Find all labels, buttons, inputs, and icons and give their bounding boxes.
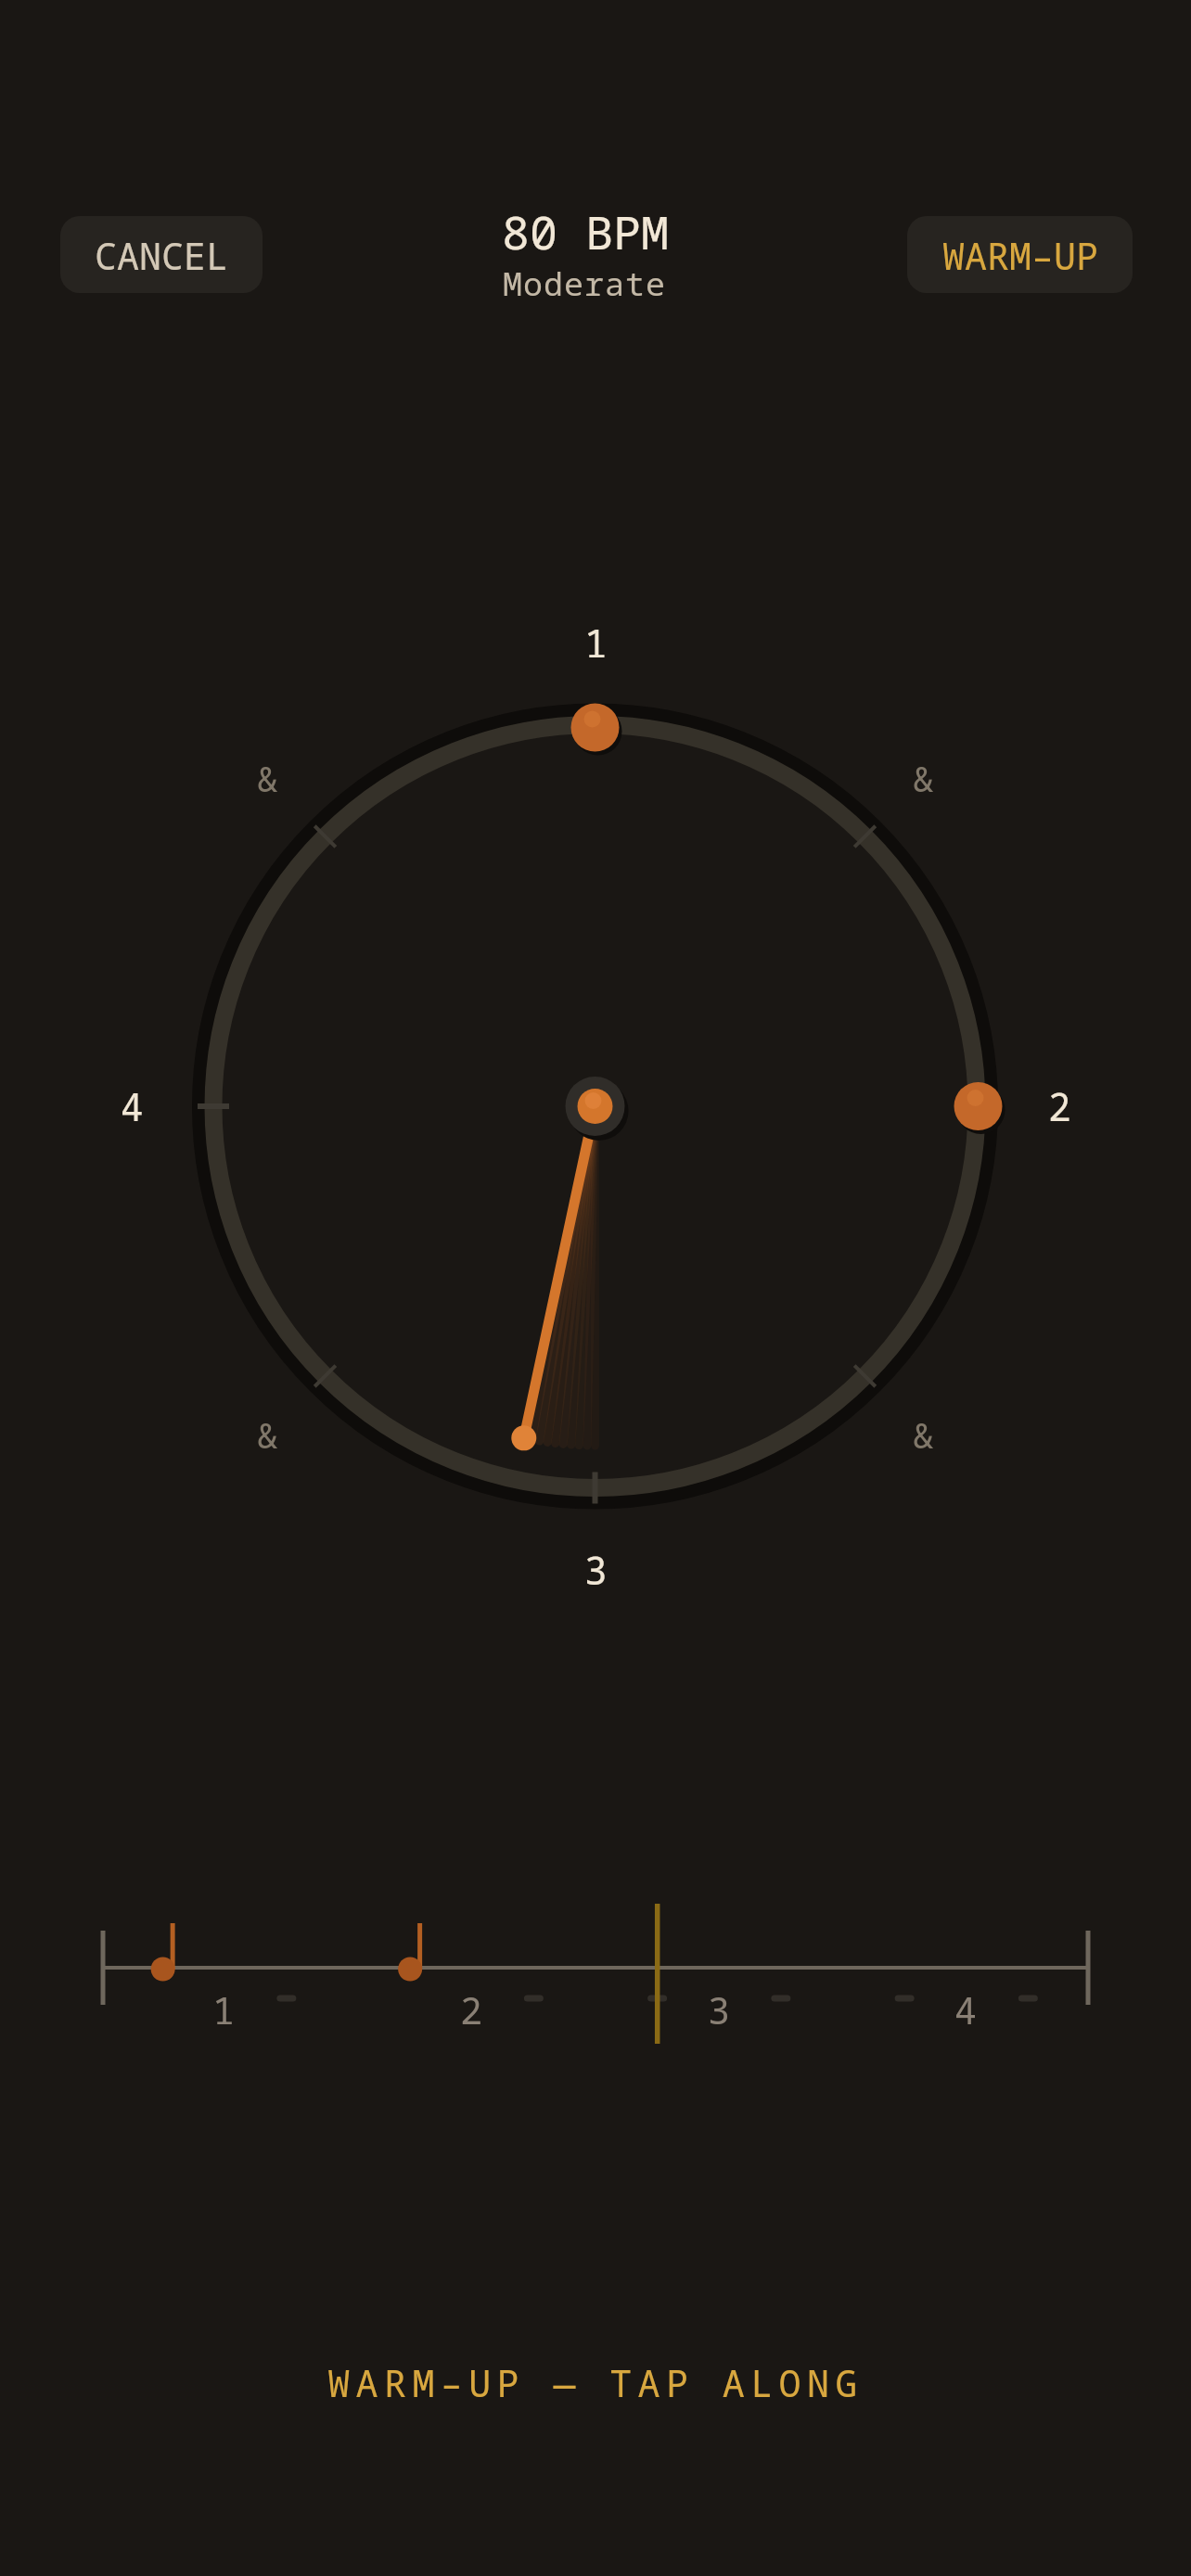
staticText: WARM–UP bbox=[942, 230, 1098, 280]
staticText: 3 bbox=[584, 1544, 608, 1596]
button[interactable]: CANCEL bbox=[60, 216, 263, 293]
staticText: & bbox=[257, 754, 278, 802]
staticText: 2 bbox=[1048, 1080, 1071, 1132]
staticText: 80 BPM bbox=[502, 200, 669, 263]
staticText: & bbox=[913, 754, 934, 802]
button[interactable]: WARM–UP bbox=[907, 216, 1133, 293]
staticText: 2 bbox=[460, 1984, 482, 2034]
staticText: 1 bbox=[584, 617, 608, 669]
staticText: 4 bbox=[121, 1080, 144, 1132]
button[interactable]: Tap along with the beat bbox=[104, 615, 1087, 1598]
staticText: Moderate bbox=[503, 261, 667, 306]
staticText: 4 bbox=[954, 1984, 977, 2034]
staticText: & bbox=[913, 1410, 934, 1459]
button[interactable]: WARM–UP — TAP ALONG bbox=[327, 2357, 864, 2407]
staticText: 1 bbox=[212, 1984, 235, 2034]
staticText: 3 bbox=[708, 1984, 730, 2034]
staticText: CANCEL bbox=[95, 230, 228, 280]
staticText: & bbox=[257, 1410, 278, 1459]
